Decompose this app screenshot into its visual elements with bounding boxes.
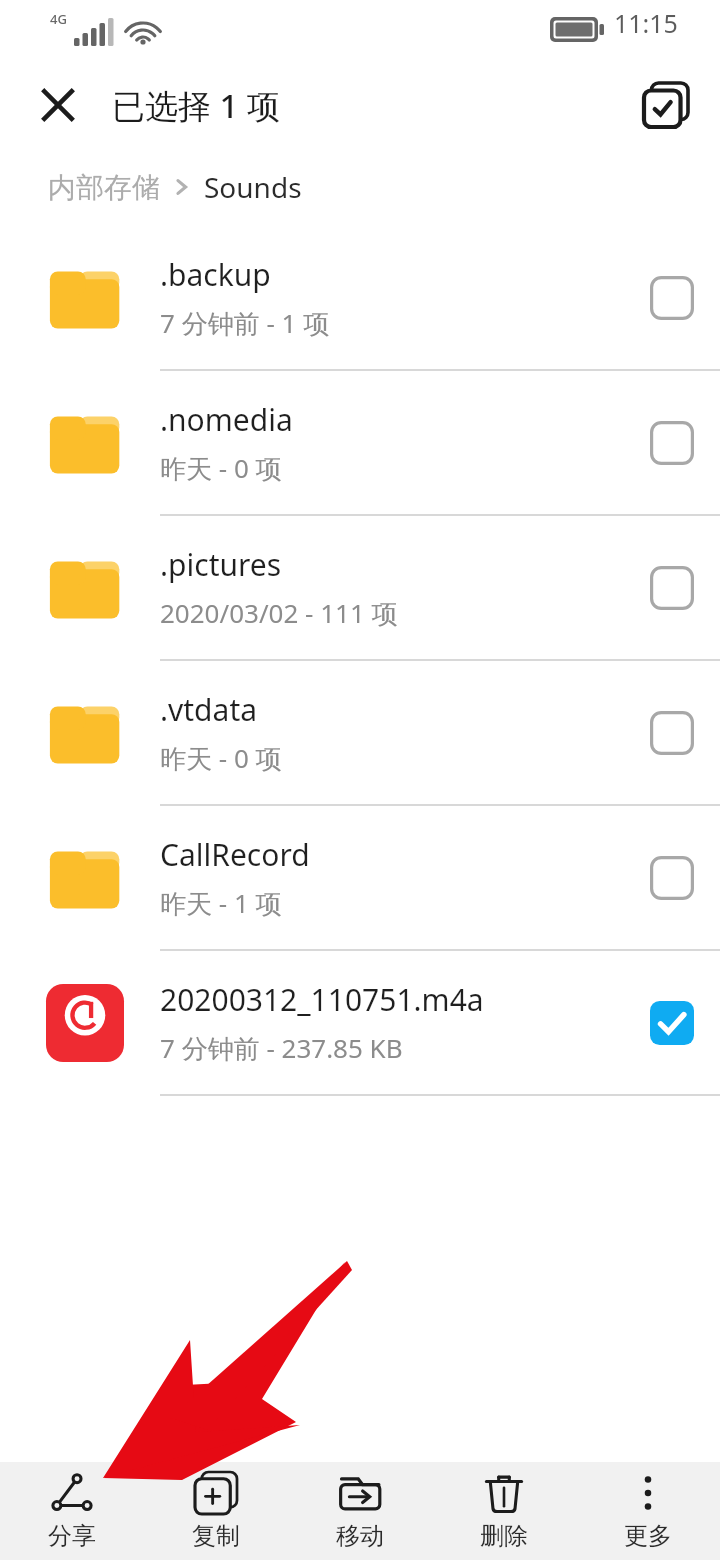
staticText: 复制 xyxy=(192,1521,240,1551)
button[interactable]: .nomedia xyxy=(0,371,720,516)
staticText: 已选择 1 项 xyxy=(112,83,281,128)
staticText: 11:15 xyxy=(614,6,678,40)
button[interactable]: Not selected xyxy=(632,693,712,773)
staticText: 20200312_110751.m4a xyxy=(160,979,484,1020)
staticText: .nomedia xyxy=(160,399,293,440)
staticText: .vtdata xyxy=(160,689,258,730)
button[interactable]: 20200312_110751.m4a xyxy=(0,951,720,1096)
button[interactable]: Select all xyxy=(630,69,702,141)
button[interactable]: 移动 xyxy=(288,1462,432,1560)
staticText: 7 分钟前 - 1 项 xyxy=(160,305,330,341)
button[interactable]: Selected xyxy=(632,983,712,1063)
button[interactable]: Sounds xyxy=(204,168,302,206)
staticText: 更多 xyxy=(624,1521,672,1551)
button[interactable]: 内部存储 xyxy=(48,170,160,205)
button[interactable]: CallRecord xyxy=(0,806,720,951)
staticText: 2020/03/02 - 111 项 xyxy=(160,595,398,631)
button[interactable]: 分享 xyxy=(0,1462,144,1560)
button[interactable]: Not selected xyxy=(632,838,712,918)
staticText: 删除 xyxy=(480,1521,528,1551)
button[interactable]: Not selected xyxy=(632,403,712,483)
button[interactable]: 复制 xyxy=(144,1462,288,1560)
staticText: .backup xyxy=(160,254,271,295)
button[interactable]: Close xyxy=(24,71,92,139)
staticText: .pictures xyxy=(160,544,282,585)
staticText: 移动 xyxy=(336,1521,384,1551)
button[interactable]: .backup xyxy=(0,226,720,371)
staticText: 7 分钟前 - 237.85 KB xyxy=(160,1030,403,1066)
staticText: 4G xyxy=(50,10,67,28)
staticText: 昨天 - 0 项 xyxy=(160,450,282,486)
staticText: 昨天 - 0 项 xyxy=(160,740,282,776)
button[interactable]: .pictures xyxy=(0,516,720,661)
button[interactable]: 更多 xyxy=(576,1462,720,1560)
staticText: 昨天 - 1 项 xyxy=(160,885,282,921)
staticText: 分享 xyxy=(48,1521,96,1551)
button[interactable]: .vtdata xyxy=(0,661,720,806)
button[interactable]: 删除 xyxy=(432,1462,576,1560)
button[interactable]: Not selected xyxy=(632,548,712,628)
button[interactable]: Not selected xyxy=(632,258,712,338)
staticText: CallRecord xyxy=(160,834,310,875)
